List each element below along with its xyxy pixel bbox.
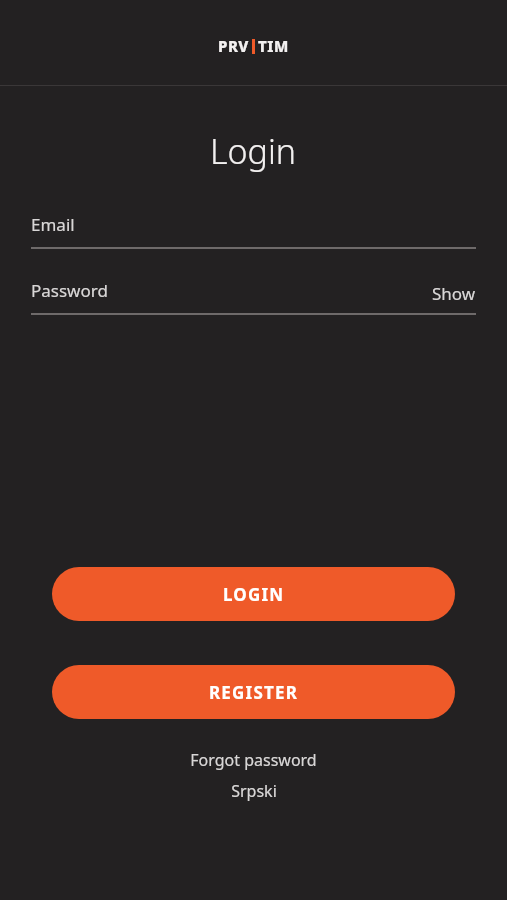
button[interactable]: LOGIN	[52, 567, 455, 621]
button[interactable]: PRVI TIM logo	[218, 36, 289, 56]
staticText: Show	[432, 282, 476, 305]
button[interactable]: Show	[424, 276, 476, 305]
button[interactable]: Srpski	[0, 780, 507, 802]
staticText: Email	[31, 213, 75, 236]
staticText: TIM	[258, 36, 289, 56]
staticText: Srpski	[231, 780, 277, 802]
button[interactable]: Forgot password	[0, 749, 507, 771]
button[interactable]: REGISTER	[52, 665, 455, 719]
staticText: Forgot password	[190, 749, 317, 771]
staticText: REGISTER	[209, 681, 299, 704]
staticText: LOGIN	[223, 583, 285, 606]
staticText: Login	[210, 128, 297, 174]
button[interactable]: Email	[31, 209, 476, 249]
staticText: PRV	[218, 36, 249, 56]
staticText: Password	[31, 279, 108, 302]
button[interactable]: Password	[31, 279, 424, 302]
